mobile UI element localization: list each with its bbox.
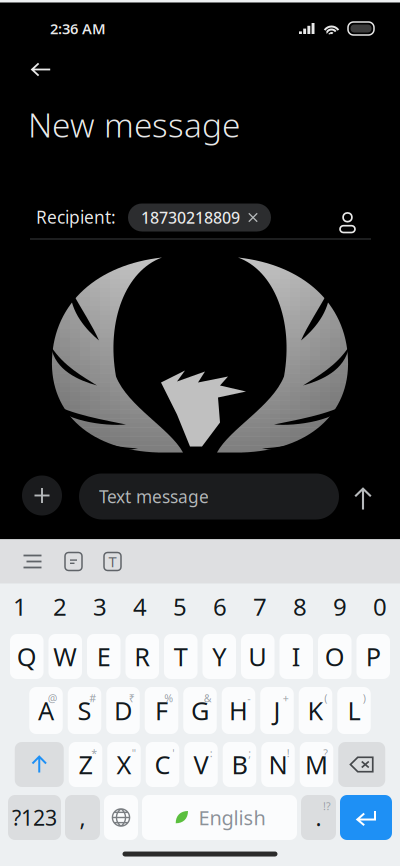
- button[interactable]: K: [299, 687, 332, 734]
- staticText: 9: [333, 591, 347, 622]
- button[interactable]: 6: [200, 584, 240, 628]
- staticText: -: [247, 691, 250, 705]
- button[interactable]: T: [164, 634, 197, 679]
- staticText: I: [292, 640, 301, 673]
- staticText: +: [283, 691, 289, 705]
- button[interactable]: C: [146, 742, 179, 787]
- staticText: C: [154, 748, 170, 781]
- button[interactable]: Send: [340, 480, 386, 517]
- button[interactable]: M: [300, 742, 333, 787]
- button[interactable]: J: [260, 687, 294, 734]
- button[interactable]: 8: [280, 584, 320, 628]
- staticText: @: [48, 691, 58, 705]
- button[interactable]: ,: [65, 795, 100, 840]
- button[interactable]: 4: [120, 584, 160, 628]
- staticText: 2: [53, 591, 67, 622]
- button[interactable]: F: [145, 687, 178, 734]
- button[interactable]: R: [125, 634, 159, 679]
- staticText: 7: [253, 591, 267, 622]
- button[interactable]: H: [222, 687, 255, 734]
- button[interactable]: Enter: [340, 795, 392, 840]
- staticText: 1: [13, 591, 27, 622]
- button[interactable]: Keyboard settings: [11, 542, 54, 580]
- staticText: J: [273, 694, 280, 727]
- button[interactable]: 9: [320, 584, 360, 628]
- button[interactable]: 3: [80, 584, 120, 628]
- button[interactable]: 7: [240, 584, 280, 628]
- staticText: F: [155, 694, 168, 727]
- staticText: English: [198, 804, 265, 831]
- button[interactable]: English: [142, 795, 297, 840]
- staticText: D: [114, 694, 132, 727]
- staticText: %: [164, 691, 173, 705]
- staticText: M: [305, 748, 328, 781]
- staticText: #: [89, 691, 96, 705]
- button[interactable]: .: [301, 795, 336, 840]
- staticText: V: [193, 748, 208, 781]
- staticText: R: [134, 640, 150, 673]
- button[interactable]: X: [107, 742, 141, 787]
- staticText: G: [191, 694, 209, 727]
- staticText: 3: [93, 591, 107, 622]
- staticText: ₹: [129, 691, 135, 705]
- staticText: ': [172, 746, 174, 760]
- staticText: P: [366, 640, 381, 673]
- button[interactable]: Text formatting: [93, 540, 132, 583]
- button[interactable]: A: [29, 687, 63, 734]
- staticText: !?: [323, 799, 331, 813]
- staticText: W: [53, 640, 77, 673]
- button[interactable]: Choose contact: [325, 202, 370, 242]
- button[interactable]: Text message: [79, 473, 339, 519]
- staticText: Q: [17, 640, 37, 673]
- button[interactable]: U: [241, 634, 274, 679]
- button[interactable]: Backspace: [338, 742, 385, 787]
- staticText: N: [268, 748, 287, 781]
- staticText: 8: [293, 591, 307, 622]
- staticText: T: [174, 640, 188, 673]
- staticText: 5: [173, 591, 187, 622]
- staticText: 6: [213, 591, 227, 622]
- staticText: X: [116, 748, 131, 781]
- button[interactable]: Y: [202, 634, 236, 679]
- button[interactable]: B: [223, 742, 256, 787]
- staticText: (: [324, 691, 327, 705]
- button[interactable]: O: [318, 634, 351, 679]
- staticText: Text message: [99, 485, 209, 508]
- staticText: 0: [373, 591, 387, 622]
- button[interactable]: E: [87, 634, 120, 679]
- button[interactable]: 18730218809: [128, 203, 271, 231]
- button[interactable]: 1: [0, 584, 40, 628]
- button[interactable]: ?123: [8, 795, 61, 840]
- button[interactable]: L: [337, 687, 371, 734]
- button[interactable]: D: [106, 687, 140, 734]
- staticText: Recipient:: [36, 205, 116, 228]
- button[interactable]: N: [261, 742, 295, 787]
- staticText: O: [325, 640, 345, 673]
- button[interactable]: 2: [40, 584, 80, 628]
- button[interactable]: 0: [360, 584, 400, 628]
- staticText: A: [38, 694, 54, 727]
- button[interactable]: Change language: [104, 795, 138, 840]
- staticText: &: [204, 691, 212, 705]
- button[interactable]: 5: [160, 584, 200, 628]
- button[interactable]: W: [48, 634, 82, 679]
- button[interactable]: Q: [10, 634, 43, 679]
- button[interactable]: I: [279, 634, 313, 679]
- button[interactable]: Back: [20, 47, 62, 91]
- staticText: ?123: [12, 803, 57, 832]
- button[interactable]: Z: [69, 742, 102, 787]
- staticText: ": [132, 746, 136, 760]
- staticText: ?: [323, 746, 328, 760]
- staticText: ,: [79, 802, 85, 832]
- button[interactable]: V: [184, 742, 218, 787]
- button[interactable]: G: [183, 687, 217, 734]
- button[interactable]: Shift: [15, 742, 64, 787]
- button[interactable]: Clipboard: [54, 540, 93, 582]
- button[interactable]: Add attachment: [22, 475, 62, 515]
- button[interactable]: P: [356, 634, 390, 679]
- staticText: 2:36 AM: [50, 19, 106, 38]
- staticText: T: [108, 552, 116, 571]
- button[interactable]: S: [68, 687, 101, 734]
- staticText: L: [347, 694, 360, 727]
- staticText: Y: [212, 640, 226, 673]
